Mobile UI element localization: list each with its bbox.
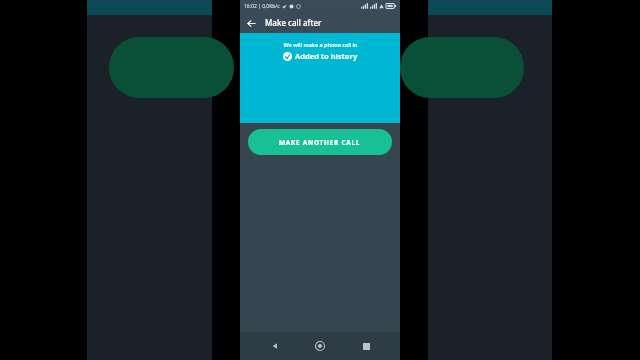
staticText: Added to history <box>295 51 358 61</box>
staticText: MAKE ANOTHER CALL <box>279 138 361 147</box>
button[interactable]: Recent apps <box>355 335 377 357</box>
staticText: Make call after <box>265 17 322 28</box>
staticText: 16:02 | 0,0Kb/c <box>244 3 280 10</box>
button[interactable]: Back <box>264 335 286 357</box>
staticText: We will make a phone call in <box>283 41 358 48</box>
button[interactable]: MAKE ANOTHER CALL <box>248 129 392 155</box>
button[interactable]: Navigate up <box>243 15 259 31</box>
button[interactable]: Home <box>309 335 331 357</box>
